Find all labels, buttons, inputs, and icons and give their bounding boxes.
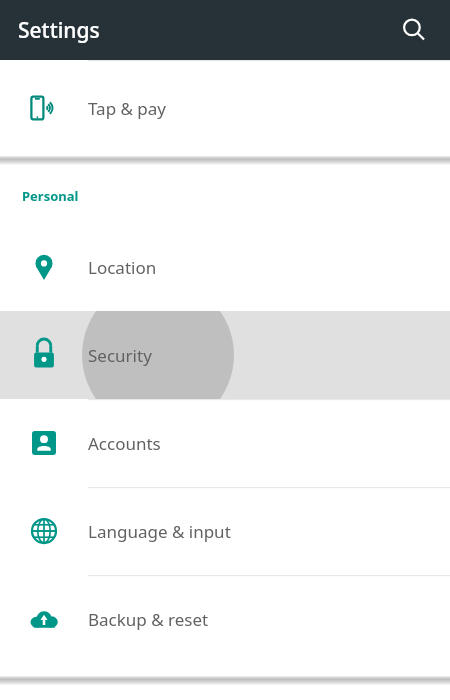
staticText: Location bbox=[88, 256, 157, 279]
button[interactable]: Tap & pay bbox=[0, 60, 450, 156]
staticText: Tap & pay bbox=[88, 97, 167, 120]
staticText: Security bbox=[88, 344, 152, 367]
button[interactable]: Search bbox=[390, 6, 438, 54]
staticText: Accounts bbox=[88, 432, 161, 455]
button[interactable]: Location bbox=[0, 223, 450, 311]
staticText: Personal bbox=[22, 187, 79, 205]
button[interactable]: Language & input bbox=[0, 487, 450, 575]
button[interactable]: Security bbox=[0, 311, 450, 399]
staticText: Backup & reset bbox=[88, 608, 209, 631]
staticText: Settings bbox=[18, 16, 100, 45]
button[interactable]: Accounts bbox=[0, 399, 450, 487]
staticText: Language & input bbox=[88, 520, 231, 543]
button[interactable]: Backup & reset bbox=[0, 575, 450, 663]
